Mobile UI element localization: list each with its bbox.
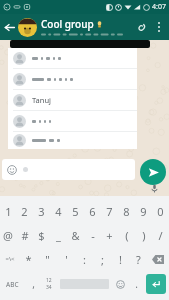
button[interactable]: ) [135, 223, 152, 247]
button[interactable]: 9 [135, 199, 152, 223]
staticText: ? [136, 252, 141, 267]
staticText: . [135, 277, 138, 291]
staticText: 1 [5, 204, 12, 219]
button[interactable]: 5 [67, 199, 84, 223]
staticText: =\< [5, 255, 15, 263]
staticText: 4 [55, 204, 62, 219]
staticText: " [45, 252, 50, 267]
button[interactable]: 3 [33, 199, 50, 223]
staticText: / [158, 228, 163, 243]
button[interactable]: * [19, 247, 38, 271]
staticText: # [21, 228, 29, 243]
button[interactable]: : [75, 247, 93, 271]
staticText: 2 [21, 204, 28, 219]
button[interactable]: Voice input [148, 182, 160, 194]
button[interactable]: @ [0, 223, 16, 247]
button[interactable]: . [129, 271, 143, 297]
staticText: 4:07 [152, 2, 166, 12]
staticText: ; [101, 252, 104, 267]
staticText: ( [125, 228, 129, 243]
button[interactable]: ; [93, 247, 111, 271]
button[interactable]: 1 [0, 199, 16, 223]
button[interactable]: - [84, 223, 101, 247]
button[interactable]: _ [50, 223, 67, 247]
staticText: 9 [140, 204, 147, 219]
button[interactable]: 6 [84, 199, 101, 223]
button[interactable]: Back [0, 18, 18, 36]
button[interactable]: 0 [152, 199, 169, 223]
button[interactable]: =\< [0, 247, 19, 271]
button[interactable]: Emoji [2, 159, 135, 180]
staticText: _ [56, 228, 61, 243]
button[interactable]: ! [111, 247, 129, 271]
button[interactable]: , [25, 271, 41, 297]
staticText: - [91, 228, 95, 243]
staticText: ' [65, 252, 68, 267]
staticText: ABC [6, 280, 19, 289]
staticText: 34 [46, 284, 52, 291]
staticText: 8 [123, 204, 130, 219]
button[interactable]: + [101, 223, 118, 247]
button[interactable]: / [152, 223, 169, 247]
button[interactable]: Enter [146, 274, 166, 294]
staticText: 5 [72, 204, 79, 219]
staticText: : [83, 252, 86, 267]
button[interactable]: 4 [50, 199, 67, 223]
button[interactable]: ? [129, 247, 147, 271]
staticText: @ [3, 228, 13, 243]
button[interactable]: Group photo [18, 18, 37, 37]
staticText: * [25, 252, 32, 267]
staticText: 7 [106, 204, 113, 219]
button[interactable]: More options [151, 19, 167, 35]
button[interactable]: 7 [101, 199, 118, 223]
button[interactable]: ABC [0, 271, 25, 297]
staticText: 12 [46, 277, 52, 284]
staticText: 3 [38, 204, 45, 219]
button[interactable]: # [16, 223, 33, 247]
staticText: 6 [89, 204, 96, 219]
staticText: & [71, 228, 80, 243]
staticText: ) [142, 228, 146, 243]
button[interactable]: ' [57, 247, 75, 271]
button[interactable]: Send [140, 159, 166, 185]
button[interactable]: Attach [131, 17, 151, 37]
staticText: + [106, 228, 113, 243]
button[interactable]: Emoji [112, 271, 129, 297]
button[interactable]: Backspace [147, 247, 169, 271]
button[interactable]: Tanuj [8, 90, 137, 110]
button[interactable]: 8 [118, 199, 135, 223]
staticText: $ [38, 228, 45, 243]
staticText: Cool group [41, 17, 94, 31]
button[interactable]: Emoji [6, 164, 18, 176]
button[interactable]: Numbers [41, 271, 57, 297]
staticText: , [32, 277, 35, 291]
button[interactable]: 2 [16, 199, 33, 223]
button[interactable] [8, 69, 137, 89]
button[interactable] [8, 48, 137, 68]
button[interactable]: & [67, 223, 84, 247]
button[interactable]: ( [118, 223, 135, 247]
staticText: Tanuj [32, 95, 51, 105]
staticText: ! [119, 252, 122, 267]
button[interactable] [8, 132, 137, 149]
button[interactable]: $ [33, 223, 50, 247]
button[interactable]: Cool group [41, 14, 131, 40]
button[interactable]: " [38, 247, 57, 271]
button[interactable] [8, 111, 137, 131]
staticText: 0 [157, 204, 164, 219]
